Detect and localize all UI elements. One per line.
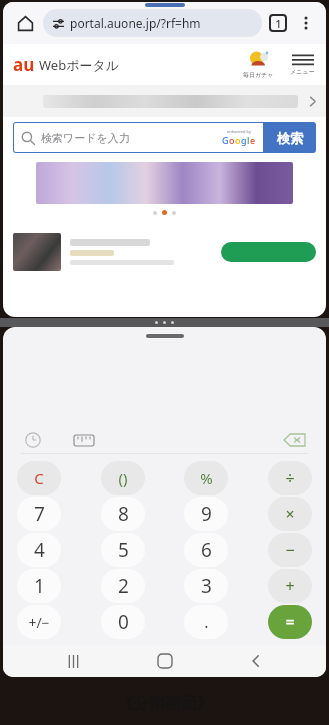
staticText: Webポータル — [39, 56, 120, 74]
staticText: e — [250, 134, 256, 146]
button[interactable]: = — [268, 605, 312, 639]
button[interactable]: − — [268, 533, 312, 567]
staticText: 3 — [201, 573, 212, 599]
button[interactable]: メニュー — [287, 53, 318, 76]
button[interactable]: 8 — [101, 497, 145, 531]
button[interactable]: C — [17, 461, 61, 495]
staticText: × — [285, 503, 295, 525]
staticText: 2 — [118, 573, 129, 599]
button[interactable]: 9 — [184, 497, 228, 531]
button[interactable]: 6 — [184, 533, 228, 567]
staticText: portal.auone.jp/?rf=hm — [70, 15, 201, 31]
staticText: . — [204, 611, 209, 633]
button[interactable]: Recent apps — [51, 645, 95, 677]
button[interactable]: 4 — [17, 533, 61, 567]
button[interactable] — [36, 162, 293, 204]
staticText: 4 — [34, 537, 45, 563]
staticText: = — [285, 611, 295, 633]
staticText: C — [34, 468, 44, 488]
staticText: 8 — [118, 501, 129, 527]
staticText: 1 — [275, 16, 282, 31]
button[interactable]: 毎日ガチャ — [240, 51, 277, 79]
staticText: メニュー — [290, 68, 315, 76]
button[interactable]: portal.auone.jp/?rf=hm — [43, 9, 262, 37]
staticText: au — [13, 53, 35, 76]
staticText: o — [235, 134, 241, 146]
button[interactable]: Home — [12, 10, 38, 36]
button[interactable]: 検索ワードを入力 — [13, 122, 264, 153]
button[interactable]: Back — [234, 645, 278, 677]
button[interactable]: () — [101, 461, 145, 495]
button[interactable]: ÷ — [268, 461, 312, 495]
staticText: + — [285, 575, 295, 597]
button[interactable]: × — [268, 497, 312, 531]
staticText: +/− — [28, 613, 50, 632]
button[interactable]: +/− — [17, 605, 61, 639]
button[interactable]: 7 — [17, 497, 61, 531]
button[interactable]: More options — [295, 12, 317, 34]
button[interactable]: % — [184, 461, 228, 495]
staticText: 検索 — [277, 130, 303, 146]
button[interactable]: Home — [143, 645, 187, 677]
button[interactable]: Backspace — [280, 427, 308, 453]
button[interactable] — [3, 85, 326, 117]
button[interactable]: 0 — [101, 605, 145, 639]
staticText: 6 — [201, 537, 212, 563]
staticText: ÷ — [285, 467, 295, 489]
button[interactable]: History — [21, 428, 45, 452]
staticText: 0 — [118, 609, 129, 635]
button[interactable]: 検索 — [264, 122, 316, 153]
staticText: % — [200, 468, 213, 488]
button[interactable] — [3, 230, 326, 274]
staticText: o — [229, 134, 235, 146]
staticText: 5 — [118, 537, 129, 563]
button[interactable]: 5 — [101, 533, 145, 567]
staticText: 検索ワードを入力 — [41, 131, 130, 145]
staticText: enhanced by — [227, 129, 252, 134]
button[interactable]: 1 — [17, 569, 61, 603]
staticText: l — [247, 134, 250, 146]
button[interactable]: . — [184, 605, 228, 639]
button[interactable]: Tabs — [269, 14, 287, 32]
staticText: 7 — [34, 501, 45, 527]
button[interactable]: + — [268, 569, 312, 603]
staticText: G — [222, 134, 229, 146]
staticText: 毎日ガチャ — [243, 71, 274, 79]
button[interactable]: Unit converter — [71, 427, 97, 453]
staticText: − — [285, 539, 295, 561]
staticText: () — [118, 468, 128, 488]
button[interactable]: 2 — [101, 569, 145, 603]
staticText: 9 — [201, 501, 212, 527]
staticText: g — [241, 134, 247, 146]
button[interactable]: 3 — [184, 569, 228, 603]
staticText: 1 — [34, 573, 45, 599]
